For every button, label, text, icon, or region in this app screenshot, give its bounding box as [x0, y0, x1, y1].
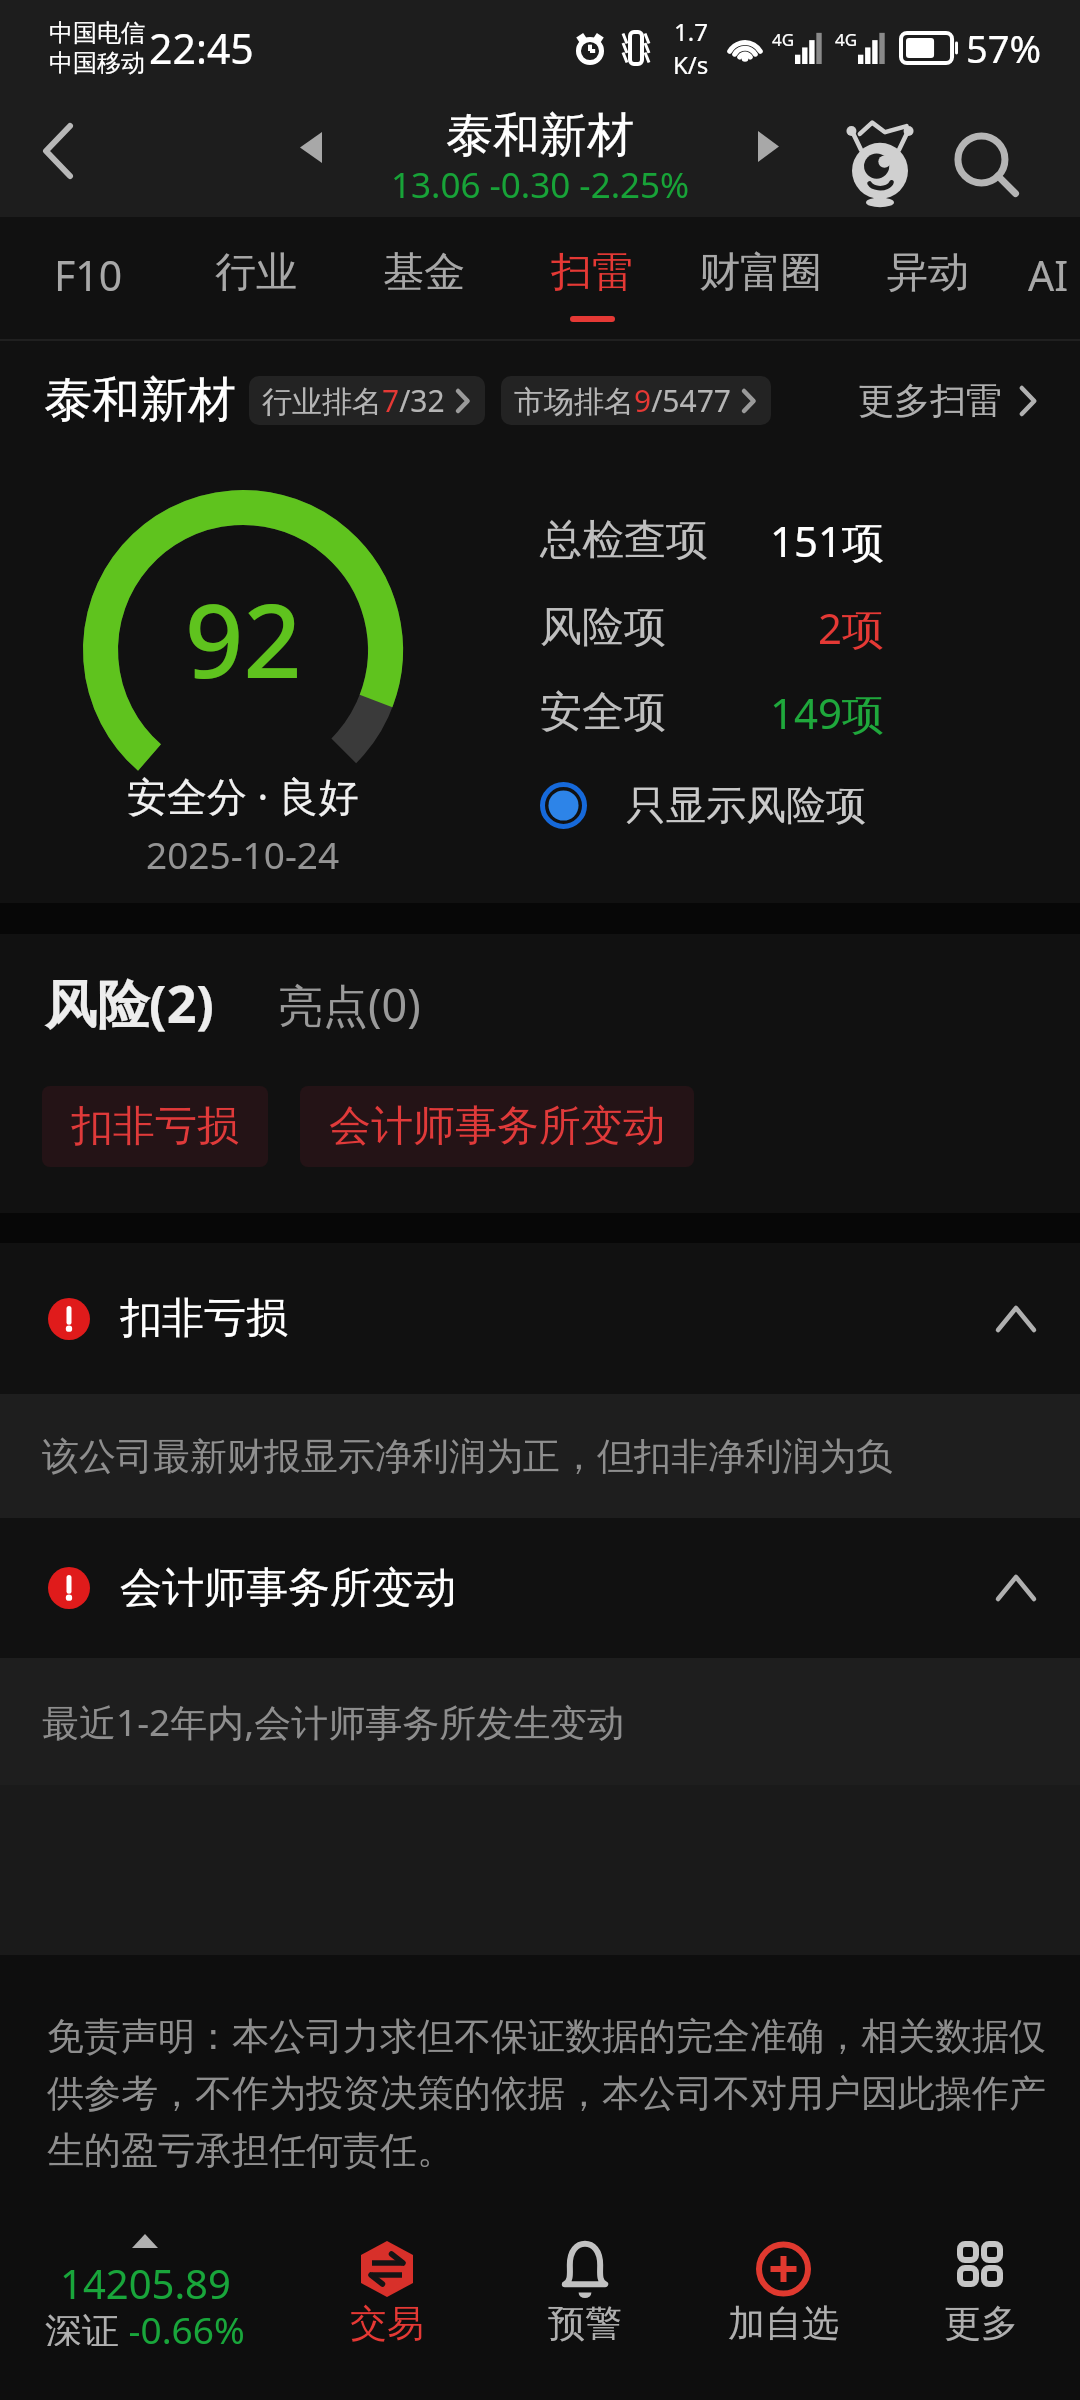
- button[interactable]: Assistant: [820, 107, 940, 227]
- staticText: 149项: [770, 684, 885, 741]
- button[interactable]: 扣非亏损: [42, 1086, 268, 1167]
- staticText: 基金: [383, 247, 465, 299]
- staticText: 亮点(0): [278, 974, 421, 1035]
- button[interactable]: 更多扫雷: [858, 378, 1040, 423]
- button[interactable]: 会计师事务所变动: [300, 1086, 694, 1167]
- button[interactable]: 只显示风险项: [540, 767, 866, 843]
- staticText: 异动: [887, 247, 969, 299]
- staticText: 预警: [548, 2300, 622, 2344]
- button[interactable]: AI: [1012, 217, 1080, 341]
- staticText: 财富圈: [699, 247, 822, 299]
- staticText: 深证 -0.66%: [45, 2304, 245, 2346]
- staticText: 中国电信: [49, 18, 145, 48]
- button[interactable]: Search: [926, 107, 1046, 227]
- staticText: 扣非亏损: [120, 1292, 288, 1345]
- button[interactable]: 异动: [844, 217, 1012, 341]
- staticText: 泰和新材: [446, 106, 634, 160]
- staticText: 会计师事务所变动: [120, 1562, 456, 1615]
- staticText: 13.06 -0.30 -2.25%: [391, 161, 690, 207]
- button[interactable]: 财富圈: [676, 217, 844, 341]
- staticText: 更多扫雷: [858, 378, 1002, 423]
- button[interactable]: 行业: [172, 217, 340, 341]
- staticText: 风险项: [540, 601, 666, 654]
- staticText: 2项: [818, 599, 885, 656]
- staticText: 安全项: [540, 686, 666, 739]
- staticText: 只显示风险项: [626, 780, 866, 830]
- staticText: 风险(2): [45, 967, 215, 1038]
- staticText: 扣非亏损: [71, 1100, 239, 1153]
- staticText: 1.7: [674, 15, 708, 48]
- staticText: 57%: [966, 22, 1042, 74]
- staticText: K/s: [673, 48, 709, 81]
- button[interactable]: 扫雷: [508, 217, 676, 341]
- staticText: 22:45: [149, 20, 254, 76]
- staticText: 总检查项: [540, 514, 708, 567]
- staticText: 免责声明：本公司力求但不保证数据的完全准确，相关数据仅供参考，不作为投资决策的依…: [47, 2013, 1057, 2174]
- button[interactable]: 行业排名7/32: [249, 376, 485, 425]
- staticText: 加自选: [728, 2300, 839, 2344]
- button[interactable]: 市场排名9/5477: [501, 376, 771, 425]
- button[interactable]: 加自选: [684, 2224, 882, 2400]
- button[interactable]: Back: [8, 101, 108, 201]
- button[interactable]: 更多: [882, 2224, 1080, 2400]
- staticText: 151项: [770, 512, 885, 569]
- staticText: 行业排名7/32: [262, 380, 445, 421]
- staticText: 会计师事务所变动: [329, 1100, 665, 1153]
- button[interactable]: F10: [4, 217, 172, 341]
- staticText: 泰和新材: [44, 370, 236, 430]
- button[interactable]: 14205.89: [0, 2224, 288, 2400]
- button[interactable]: 扣非亏损: [0, 1243, 1080, 1394]
- staticText: F10: [54, 247, 123, 303]
- staticText: 中国移动: [49, 48, 145, 78]
- staticText: 最近1-2年内,会计师事务所发生变动: [42, 1696, 625, 1747]
- staticText: 交易: [350, 2300, 424, 2344]
- staticText: 该公司最新财报显示净利润为正，但扣非净利润为负: [42, 1433, 893, 1480]
- staticText: 4G: [772, 28, 795, 51]
- staticText: 2025-10-24: [146, 829, 340, 875]
- staticText: 14205.89: [60, 2256, 231, 2300]
- button[interactable]: 风险(2): [45, 967, 215, 1038]
- button[interactable]: 会计师事务所变动: [0, 1518, 1080, 1658]
- staticText: 92: [185, 569, 302, 708]
- button[interactable]: 亮点(0): [278, 974, 421, 1035]
- button[interactable]: 预警: [486, 2224, 684, 2400]
- staticText: 行业: [215, 247, 297, 299]
- staticText: 市场排名9/5477: [514, 380, 731, 421]
- staticText: 4G: [835, 28, 858, 51]
- button[interactable]: Previous stock: [271, 107, 351, 187]
- staticText: 安全分 · 良好: [127, 768, 359, 818]
- button[interactable]: 基金: [340, 217, 508, 341]
- button[interactable]: 交易: [288, 2224, 486, 2400]
- staticText: AI: [1028, 247, 1069, 303]
- button[interactable]: Next stock: [728, 106, 808, 186]
- staticText: 更多: [944, 2300, 1018, 2344]
- staticText: 扫雷: [551, 247, 633, 299]
